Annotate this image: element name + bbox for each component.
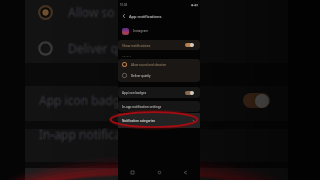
- staticText: App icon badg: [38, 92, 120, 108]
- staticText: Allow so: [69, 5, 116, 21]
- staticText: Allow so: [69, 4, 116, 20]
- button[interactable]: Home: [155, 168, 164, 177]
- staticText: In-app notifica: [40, 126, 122, 142]
- button[interactable]: In-app notification settings: [118, 101, 200, 112]
- staticText: In-app notifica: [39, 127, 121, 143]
- staticText: ●▴▮▮: [191, 3, 198, 6]
- staticText: App icon badg: [40, 91, 122, 107]
- staticText: App notifications: [129, 14, 162, 19]
- staticText: App icon badg: [40, 92, 122, 108]
- staticText: In-app notification settings: [122, 105, 162, 109]
- button[interactable]: Toggle: [185, 91, 194, 95]
- button[interactable]: Deliver quietly: [118, 70, 200, 81]
- staticText: In-app notifica: [38, 125, 120, 141]
- staticText: Allow so: [68, 5, 115, 21]
- staticText: Deliver q: [69, 39, 120, 55]
- staticText: App icon badges: [122, 91, 147, 95]
- staticText: Deliver q: [69, 40, 120, 56]
- staticText: Allow so: [67, 5, 114, 21]
- staticText: Deliver q: [67, 40, 118, 56]
- staticText: App icon badg: [40, 93, 122, 109]
- staticText: Allow so: [69, 3, 116, 19]
- staticText: In-app notifica: [40, 127, 122, 143]
- button[interactable]: App icon badges: [118, 87, 200, 98]
- staticText: Show notifications: [122, 43, 151, 47]
- staticText: Allow so: [67, 3, 114, 19]
- staticText: App icon badg: [38, 91, 120, 107]
- staticText: General: [122, 54, 132, 57]
- staticText: Deliver q: [67, 41, 118, 57]
- button[interactable]: Recent apps: [128, 168, 137, 177]
- staticText: App icon badg: [38, 93, 120, 109]
- button[interactable]: Allow sound and vibration: [118, 59, 200, 70]
- staticText: Deliver q: [68, 39, 119, 55]
- staticText: Allow so: [68, 4, 115, 20]
- staticText: App icon badg: [39, 92, 121, 108]
- staticText: In-app notifica: [38, 127, 120, 143]
- button[interactable]: Instagram: [122, 26, 200, 36]
- button[interactable]: Navigate up: [118, 12, 129, 20]
- button[interactable]: Allow sound and vibration: [118, 59, 200, 82]
- staticText: Allow so: [67, 4, 114, 20]
- staticText: In-app notifica: [38, 126, 120, 142]
- staticText: Notification categories: [122, 119, 155, 123]
- staticText: App icon badg: [39, 93, 121, 109]
- button[interactable]: Notification categories: [118, 113, 200, 128]
- staticText: Deliver q: [68, 41, 119, 57]
- staticText: 10:04: [120, 3, 128, 7]
- staticText: Allow so: [68, 3, 115, 19]
- staticText: In-app notifica: [39, 126, 121, 142]
- staticText: Deliver q: [67, 39, 118, 55]
- staticText: Allow sound and vibration: [131, 63, 167, 67]
- staticText: In-app notifica: [39, 125, 121, 141]
- staticText: In-app notifica: [40, 125, 122, 141]
- button[interactable]: Show notifications: [118, 40, 200, 50]
- staticText: Deliver q: [69, 41, 120, 57]
- staticText: Deliver q: [68, 40, 119, 56]
- staticText: App icon badg: [39, 91, 121, 107]
- button[interactable]: Toggle: [185, 43, 194, 47]
- staticText: Instagram: [133, 29, 149, 33]
- button[interactable]: Back: [181, 168, 190, 177]
- staticText: Deliver quietly: [131, 74, 151, 78]
